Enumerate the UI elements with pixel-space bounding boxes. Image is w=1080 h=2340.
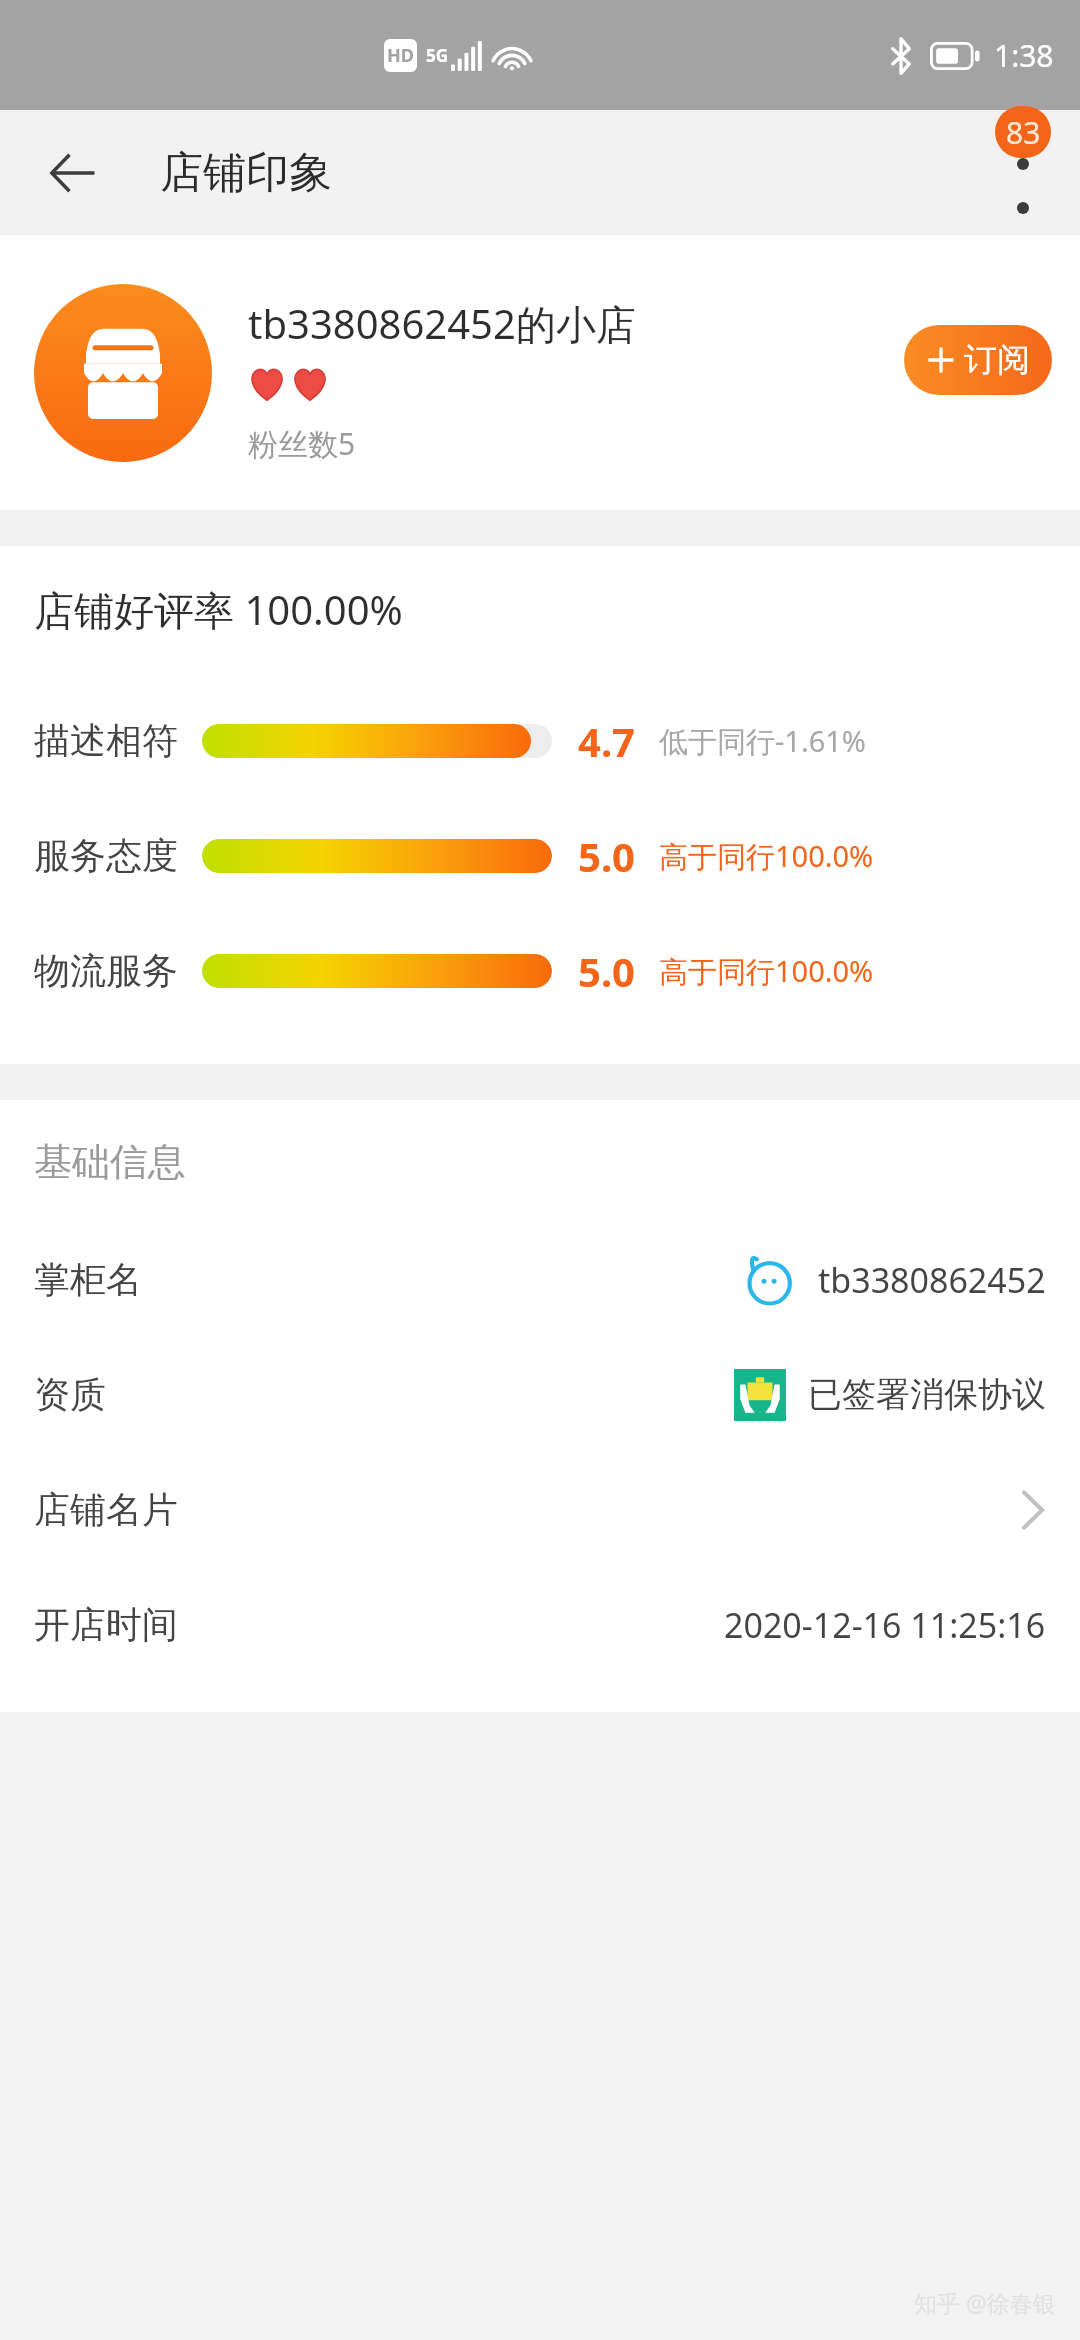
staticText: 基础信息 bbox=[34, 1138, 186, 1186]
staticText: 低于同行-1.61% bbox=[659, 721, 866, 761]
staticText: 已签署消保协议 bbox=[808, 1373, 1046, 1416]
staticText: 5.0 bbox=[578, 944, 635, 998]
staticText: 开店时间 bbox=[34, 1602, 178, 1647]
staticText: 物流服务 bbox=[34, 948, 178, 993]
button[interactable]: 掌柜名 bbox=[0, 1222, 1080, 1337]
staticText: 资质 bbox=[34, 1372, 106, 1417]
button[interactable]: 开店时间 bbox=[0, 1567, 1080, 1682]
button[interactable]: 订阅 bbox=[904, 325, 1052, 395]
staticText: tb3380862452 bbox=[818, 1257, 1046, 1303]
staticText: 店铺好评率 100.00% bbox=[34, 582, 403, 637]
staticText: 83 bbox=[1006, 112, 1041, 153]
staticText: 5G bbox=[426, 44, 449, 67]
staticText: 1:38 bbox=[994, 35, 1054, 76]
staticText: 掌柜名 bbox=[34, 1257, 142, 1302]
staticText: 5.0 bbox=[578, 829, 635, 883]
staticText: 服务态度 bbox=[34, 833, 178, 878]
staticText: tb3380862452的小店 bbox=[248, 296, 636, 351]
staticText: 粉丝数5 bbox=[248, 423, 356, 464]
staticText: 店铺名片 bbox=[34, 1487, 178, 1532]
staticText: 知乎 @徐春银 bbox=[914, 2287, 1056, 2318]
staticText: HD bbox=[387, 43, 414, 68]
staticText: 4.7 bbox=[578, 714, 635, 768]
staticText: 高于同行100.0% bbox=[659, 951, 874, 991]
button[interactable]: 店铺名片 bbox=[0, 1452, 1080, 1567]
button[interactable]: 服务态度 bbox=[0, 798, 1080, 913]
staticText: 店铺印象 bbox=[160, 146, 332, 200]
staticText: 高于同行100.0% bbox=[659, 836, 874, 876]
button[interactable]: More options bbox=[980, 110, 1066, 235]
staticText: 订阅 bbox=[964, 339, 1030, 381]
button[interactable]: 资质 bbox=[0, 1337, 1080, 1452]
button[interactable]: Back bbox=[34, 135, 110, 211]
button[interactable]: 描述相符 bbox=[0, 683, 1080, 798]
staticText: 2020-12-16 11:25:16 bbox=[724, 1602, 1046, 1648]
staticText: 描述相符 bbox=[34, 718, 178, 763]
button[interactable]: 物流服务 bbox=[0, 913, 1080, 1028]
